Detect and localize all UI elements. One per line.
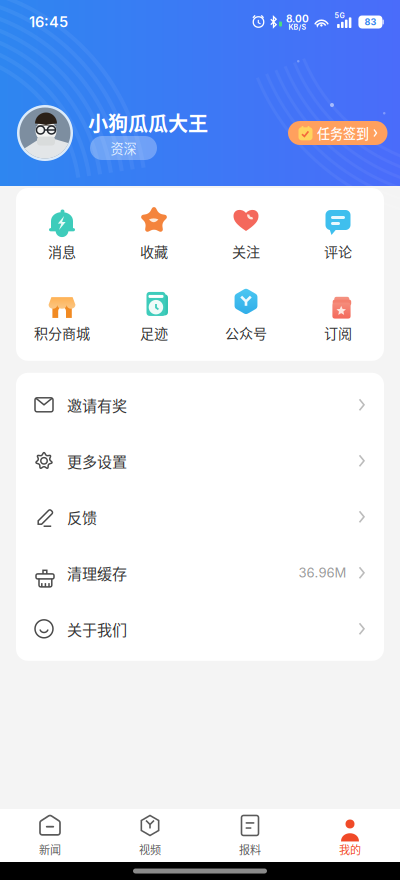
staticText: 新闻 [39,841,61,857]
button[interactable]: 关注 [200,206,292,261]
staticText: 公众号 [225,322,267,343]
staticText: 关注 [232,241,260,261]
button[interactable]: 收藏 [108,206,200,261]
button[interactable]: 评论 [292,206,384,261]
button[interactable]: 积分商城 [16,287,108,343]
staticText: 更多设置 [67,450,127,472]
staticText: KB/S [288,23,306,31]
staticText: 任务签到 [317,123,369,142]
button[interactable]: 关于我们 [16,601,384,657]
staticText: 积分商城 [34,322,90,343]
staticText: 资深 [110,138,136,157]
button[interactable]: 消息 [16,206,108,261]
staticText: 16:45 [29,13,68,31]
staticText: 8.00 [286,13,309,25]
button[interactable]: 更多设置 [16,433,384,489]
staticText: 邀请有奖 [67,394,127,416]
staticText: 小狗瓜瓜大王 [88,108,208,137]
staticText: 收藏 [140,241,168,261]
staticText: 5G [334,11,344,20]
staticText: 关于我们 [67,618,127,640]
staticText: 36.96M [298,565,346,581]
staticText: 消息 [48,241,76,261]
button[interactable]: 清理缓存 [16,545,384,601]
staticText: 报料 [239,841,261,857]
staticText: 清理缓存 [67,562,127,584]
button[interactable]: 新闻 [0,807,100,863]
button[interactable]: 我的 [300,807,400,863]
staticText: 83 [364,16,376,27]
staticText: 视频 [139,841,161,857]
button[interactable]: 报料 [200,807,300,863]
staticText: 我的 [339,841,361,857]
staticText: 订阅 [324,322,352,343]
button[interactable]: 反馈 [16,489,384,545]
button[interactable]: 任务签到 [288,121,387,145]
staticText: 足迹 [140,322,168,343]
staticText: 反馈 [67,506,97,528]
button[interactable]: 邀请有奖 [16,377,384,433]
staticText: 评论 [324,241,352,261]
button[interactable]: 视频 [100,807,200,863]
button[interactable]: 足迹 [108,287,200,343]
button[interactable]: 订阅 [292,287,384,343]
button[interactable]: 公众号 [200,287,292,343]
